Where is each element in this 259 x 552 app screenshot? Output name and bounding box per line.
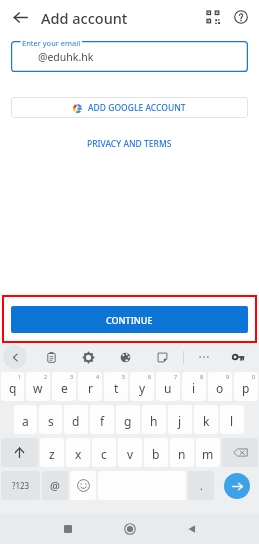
staticText: @eduhk.hk (38, 50, 94, 64)
button[interactable]: h (142, 405, 166, 434)
staticText: 7 (174, 373, 178, 380)
staticText: CONTINUE (106, 314, 153, 326)
staticText: u (164, 380, 172, 396)
staticText: q (9, 380, 17, 396)
staticText: o (216, 380, 224, 396)
staticText: ?123 (12, 480, 30, 491)
button[interactable]: p (234, 372, 258, 401)
staticText: c (101, 446, 107, 462)
staticText: 2 (44, 373, 48, 380)
staticText: t (114, 380, 119, 396)
staticText: PRIVACY AND TERMS (87, 138, 172, 150)
staticText: s (48, 413, 54, 429)
button[interactable]: PRIVACY AND TERMS (84, 135, 175, 153)
button[interactable]: Recent apps (53, 514, 83, 544)
button[interactable]: d (64, 405, 88, 434)
button[interactable]: k (194, 405, 218, 434)
button[interactable]: More options (194, 347, 214, 367)
button[interactable]: Themes (115, 347, 135, 367)
staticText: 6 (148, 373, 152, 380)
staticText: m (202, 446, 214, 462)
staticText: @ (50, 478, 60, 493)
button[interactable]: c (92, 438, 116, 467)
button[interactable]: Enter (224, 473, 250, 499)
button[interactable]: . (188, 471, 214, 500)
staticText: 8 (200, 373, 204, 380)
button[interactable]: t (104, 372, 128, 401)
staticText: f (100, 413, 105, 429)
other: Backspace (233, 445, 248, 460)
button[interactable]: v (118, 438, 142, 467)
button[interactable]: Scan QR code (199, 3, 227, 31)
button[interactable]: Backspace (222, 438, 258, 467)
button[interactable]: m (196, 438, 220, 467)
staticText: i (192, 380, 196, 396)
button[interactable]: x (66, 438, 90, 467)
button[interactable]: i (182, 372, 206, 401)
staticText: b (152, 446, 160, 462)
staticText: y (139, 380, 146, 396)
staticText: 1 (18, 373, 22, 380)
staticText: 3 (70, 373, 74, 380)
staticText: l (230, 413, 234, 429)
button[interactable]: a (14, 405, 37, 434)
staticText: x (75, 446, 82, 462)
staticText: z (49, 446, 55, 462)
staticText: k (203, 413, 210, 429)
button[interactable]: l (220, 405, 244, 434)
button[interactable]: q (1, 372, 24, 401)
button[interactable]: ?123 (1, 471, 40, 500)
button[interactable]: f (90, 405, 114, 434)
staticText: n (178, 446, 186, 462)
button[interactable]: Passwords (228, 347, 248, 367)
button[interactable]: Back (177, 514, 207, 544)
button[interactable]: u (156, 372, 180, 401)
staticText: r (88, 380, 93, 396)
button[interactable]: z (40, 438, 64, 467)
staticText: j (178, 413, 182, 429)
button[interactable]: Emoji (70, 471, 96, 500)
staticText: e (61, 380, 68, 396)
button[interactable]: CONTINUE (11, 306, 248, 333)
button[interactable]: Clipboard (41, 347, 61, 367)
staticText: v (127, 446, 134, 462)
staticText: h (150, 413, 158, 429)
staticText: . (200, 479, 203, 493)
button[interactable]: s (39, 405, 62, 434)
button[interactable]: n (170, 438, 194, 467)
button[interactable]: Help (227, 3, 255, 31)
button[interactable]: w (26, 372, 50, 401)
staticText: 0 (252, 373, 256, 380)
staticText: p (242, 380, 250, 396)
button[interactable]: y (130, 372, 154, 401)
other: Shift (13, 446, 26, 459)
button[interactable]: Back (6, 3, 34, 31)
button[interactable]: Shift (1, 438, 38, 467)
button[interactable]: Expand toolbar (3, 345, 27, 369)
button[interactable]: Sticker (152, 347, 172, 367)
staticText: g (124, 413, 132, 429)
staticText: Enter your email (22, 38, 81, 48)
staticText: Add account (41, 8, 128, 28)
button[interactable]: b (144, 438, 168, 467)
staticText: 5 (122, 373, 126, 380)
staticText: 9 (226, 373, 230, 380)
button[interactable]: Settings (78, 347, 98, 367)
staticText: w (33, 380, 43, 396)
button[interactable]: o (208, 372, 232, 401)
staticText: a (22, 413, 29, 429)
button[interactable]: e (52, 372, 76, 401)
button[interactable]: r (78, 372, 102, 401)
button[interactable]: g (116, 405, 140, 434)
button[interactable]: ADD GOOGLE ACCOUNT (11, 97, 248, 118)
button[interactable]: Home (115, 514, 145, 544)
button[interactable]: @ (42, 471, 68, 500)
staticText: ADD GOOGLE ACCOUNT (88, 102, 186, 114)
button[interactable]: j (168, 405, 192, 434)
button[interactable]: @eduhk.hk (11, 41, 248, 72)
staticText: 4 (96, 373, 100, 380)
staticText: d (72, 413, 80, 429)
